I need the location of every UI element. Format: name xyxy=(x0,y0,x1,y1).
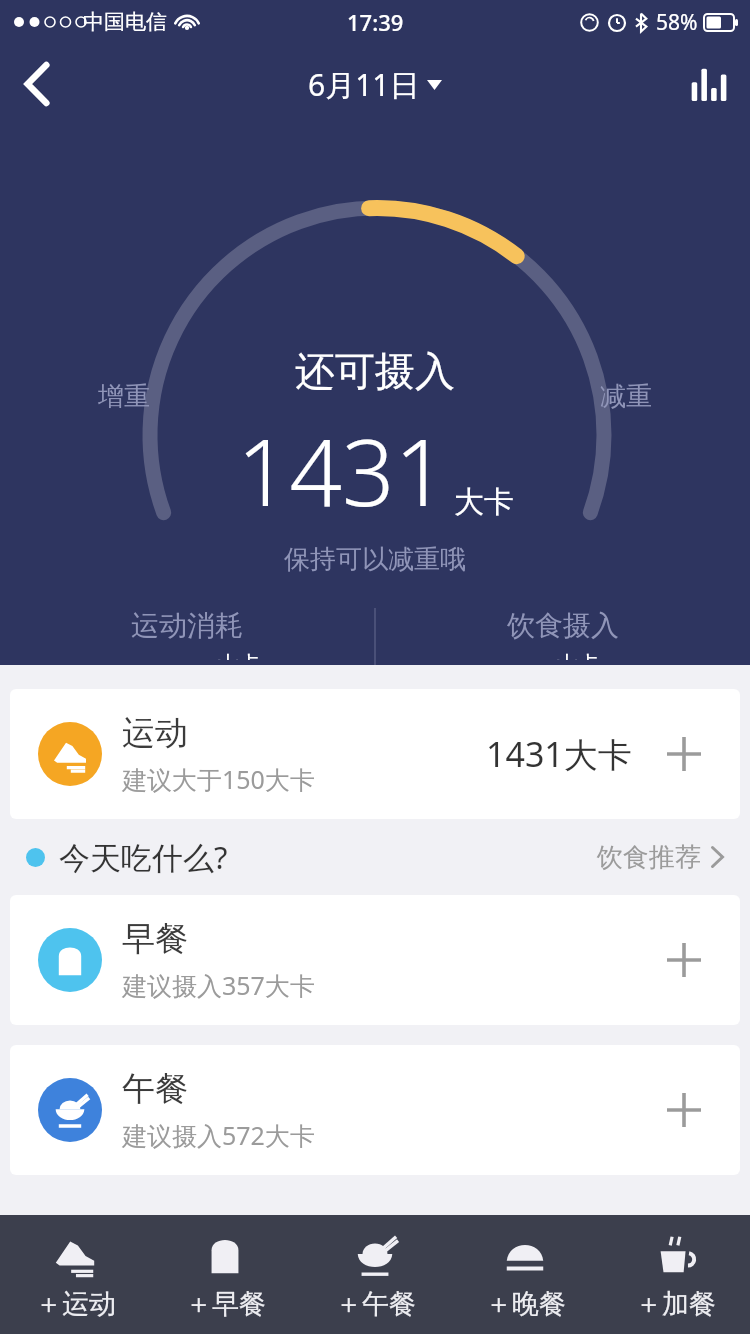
staticText: 饮食摄入 xyxy=(507,608,619,643)
staticText: ＋晚餐 xyxy=(485,1287,566,1321)
staticText: 58% xyxy=(656,8,698,37)
staticText: 运动消耗 xyxy=(131,608,243,643)
button[interactable]: Add 早餐 xyxy=(658,934,710,986)
staticText: 6月11日 xyxy=(308,64,420,105)
staticText: 饮食推荐 xyxy=(597,841,701,874)
staticText: ＋运动 xyxy=(35,1287,116,1321)
staticText: 建议摄入572大卡 xyxy=(122,1118,315,1152)
staticText: 减重 xyxy=(600,380,652,413)
button[interactable]: ＋加餐 xyxy=(600,1215,750,1334)
staticText: 大卡 xyxy=(217,651,261,660)
button[interactable]: 午餐 xyxy=(10,1045,740,1175)
staticText: 运动 xyxy=(122,712,188,754)
staticText: 还可摄入 xyxy=(295,346,455,396)
staticText: 17:39 xyxy=(347,7,404,37)
staticText: 今天吃什么? xyxy=(59,836,228,878)
staticText: ＋午餐 xyxy=(335,1287,416,1321)
button[interactable]: ＋运动 xyxy=(0,1215,150,1334)
staticText: 建议摄入357大卡 xyxy=(122,968,315,1002)
staticText: 早餐 xyxy=(122,918,188,960)
staticText: 1431大卡 xyxy=(486,731,632,777)
staticText: 大卡 xyxy=(556,651,600,660)
staticText: 大卡 xyxy=(454,483,514,521)
staticText: 午餐 xyxy=(122,1068,188,1110)
button[interactable]: ＋早餐 xyxy=(150,1215,300,1334)
staticText: 增重 xyxy=(98,380,150,413)
button[interactable]: 早餐 xyxy=(10,895,740,1025)
staticText: 1431 xyxy=(237,408,448,533)
staticText: 保持可以减重哦 xyxy=(284,543,466,576)
staticText: 建议大于150大卡 xyxy=(122,762,315,796)
button[interactable]: Back xyxy=(0,47,74,121)
button[interactable]: ＋午餐 xyxy=(300,1215,450,1334)
staticText: 中国电信 xyxy=(83,9,167,35)
button[interactable]: Statistics xyxy=(670,44,750,124)
button[interactable]: ＋晚餐 xyxy=(450,1215,600,1334)
staticText: ＋早餐 xyxy=(185,1287,266,1321)
button[interactable]: Add 运动 xyxy=(658,728,710,780)
button[interactable]: 今天吃什么? xyxy=(0,819,750,895)
button[interactable]: 运动 xyxy=(10,689,740,819)
button[interactable]: 6月11日 xyxy=(308,64,442,105)
staticText: ＋加餐 xyxy=(635,1287,716,1321)
button[interactable]: Add 午餐 xyxy=(658,1084,710,1136)
